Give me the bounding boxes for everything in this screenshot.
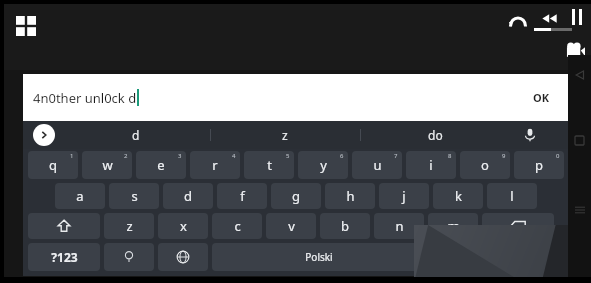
button[interactable]	[482, 213, 554, 239]
staticText: k	[455, 187, 462, 205]
staticText: 4	[232, 152, 236, 160]
staticText: 0	[556, 152, 560, 160]
button[interactable]: k	[433, 183, 483, 209]
staticText: i	[429, 156, 433, 174]
staticText: g	[292, 187, 300, 205]
button[interactable]: a	[55, 183, 105, 209]
button[interactable]: y	[298, 151, 348, 179]
staticText: 5	[286, 152, 290, 160]
button[interactable]: 4n0ther unl0ck d	[23, 74, 568, 121]
staticText: b	[341, 217, 349, 235]
button[interactable]: w	[82, 151, 132, 179]
button[interactable]: OK	[529, 86, 554, 109]
staticText: n	[395, 217, 404, 235]
staticText: OK	[533, 90, 550, 105]
button[interactable]: o	[460, 151, 510, 179]
staticText: r	[212, 156, 218, 174]
button[interactable]	[158, 243, 208, 271]
button[interactable]	[484, 243, 556, 271]
button[interactable]: f	[217, 183, 267, 209]
button[interactable]: r	[190, 151, 240, 179]
button[interactable]: d	[163, 183, 213, 209]
staticText: o	[481, 156, 489, 174]
staticText: 1	[70, 152, 74, 160]
button[interactable]: Polski	[212, 243, 426, 271]
button[interactable]: u	[352, 151, 402, 179]
button[interactable]: Apps	[10, 10, 42, 42]
button[interactable]: c	[212, 213, 262, 239]
staticText: 3	[178, 152, 182, 160]
staticText: t	[267, 156, 272, 174]
staticText: j	[402, 187, 406, 205]
button[interactable]: z	[104, 213, 154, 239]
staticText: p	[535, 156, 543, 174]
staticText: m	[447, 217, 460, 235]
button[interactable]: Undo	[505, 8, 531, 34]
staticText: l	[510, 187, 514, 205]
button[interactable]: d	[61, 121, 210, 149]
button[interactable]: x	[158, 213, 208, 239]
staticText: z	[126, 217, 133, 235]
button[interactable]: Rewind	[537, 6, 561, 30]
button[interactable]: Voice input	[518, 123, 542, 147]
staticText: q	[49, 156, 57, 174]
staticText: 7	[394, 152, 398, 160]
button[interactable]	[104, 243, 154, 271]
staticText: 6	[340, 152, 344, 160]
button[interactable]: h	[325, 183, 375, 209]
button[interactable]: j	[379, 183, 429, 209]
staticText: e	[157, 156, 165, 174]
button[interactable]: Home	[572, 133, 587, 148]
button[interactable]: ?123	[28, 243, 100, 271]
button[interactable]: m	[428, 213, 478, 239]
button[interactable]: p	[514, 151, 564, 179]
staticText: c	[234, 217, 241, 235]
staticText: x	[180, 217, 187, 235]
staticText: d	[184, 187, 192, 205]
button[interactable]: g	[271, 183, 321, 209]
staticText: a	[76, 187, 84, 205]
button[interactable]: More suggestions	[33, 124, 55, 146]
staticText: 4n0ther unl0ck d	[33, 89, 137, 107]
button[interactable]: Back	[572, 67, 587, 82]
staticText: w	[102, 156, 113, 174]
staticText: u	[373, 156, 382, 174]
button[interactable]: v	[266, 213, 316, 239]
staticText: d	[132, 127, 140, 143]
staticText: 9	[502, 152, 506, 160]
staticText: 2	[124, 152, 128, 160]
staticText: f	[240, 187, 245, 205]
button[interactable]: Recent apps	[572, 202, 587, 217]
button[interactable]: i	[406, 151, 456, 179]
button[interactable]: .	[430, 243, 480, 271]
staticText: 8	[448, 152, 452, 160]
button[interactable]: l	[487, 183, 537, 209]
staticText: do	[428, 127, 443, 143]
button[interactable]	[28, 213, 100, 239]
button[interactable]: z	[210, 121, 360, 149]
staticText: y	[320, 156, 327, 174]
staticText: s	[131, 187, 138, 205]
staticText: z	[282, 127, 288, 143]
button[interactable]: t	[244, 151, 294, 179]
staticText: Polski	[305, 250, 333, 264]
button[interactable]: Pause	[566, 6, 588, 28]
button[interactable]: q	[28, 151, 78, 179]
staticText: v	[288, 217, 295, 235]
button[interactable]: s	[109, 183, 159, 209]
staticText: ?123	[51, 249, 78, 265]
button[interactable]: e	[136, 151, 186, 179]
button[interactable]: Record	[563, 38, 587, 62]
button[interactable]: n	[374, 213, 424, 239]
button[interactable]: b	[320, 213, 370, 239]
button[interactable]: do	[360, 121, 510, 149]
staticText: h	[346, 187, 355, 205]
